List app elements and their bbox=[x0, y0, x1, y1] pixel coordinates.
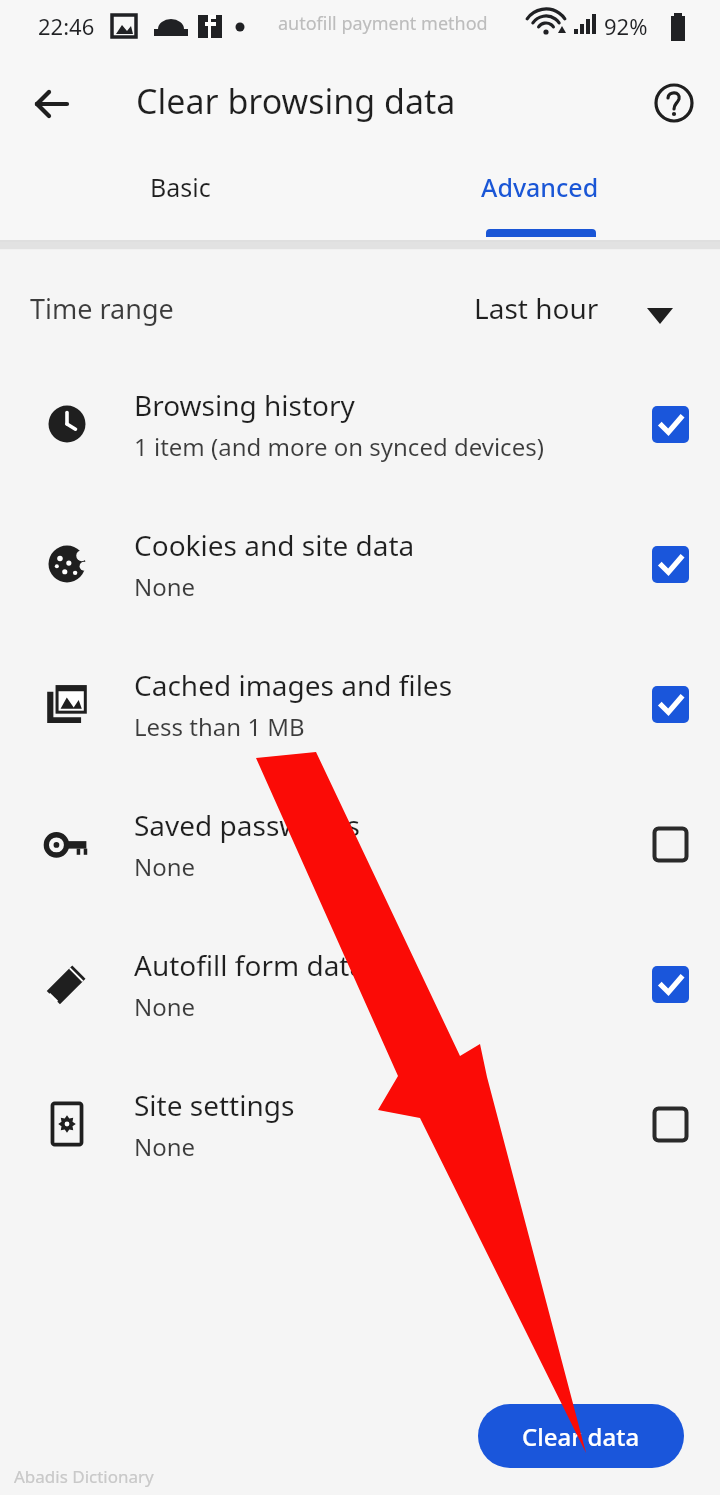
button[interactable]: Time range bbox=[0, 268, 720, 346]
staticText: None bbox=[134, 1130, 196, 1163]
staticText: Site settings bbox=[134, 1086, 295, 1124]
staticText: None bbox=[134, 570, 196, 603]
staticText: Time range bbox=[30, 290, 174, 327]
staticText: Basic bbox=[150, 170, 211, 204]
button[interactable]: Help bbox=[645, 74, 703, 132]
button[interactable]: Unchecked bbox=[652, 1106, 689, 1143]
staticText: Less than 1 MB bbox=[134, 710, 305, 743]
staticText: Cookies and site data bbox=[134, 526, 415, 564]
button[interactable]: Saved passwords bbox=[0, 796, 720, 892]
button[interactable]: Browsing history bbox=[0, 376, 720, 472]
staticText: Autofill form data bbox=[134, 946, 366, 984]
button[interactable]: Cookies and site data bbox=[0, 516, 720, 612]
button[interactable]: Checked bbox=[652, 546, 689, 583]
staticText: Clear browsing data bbox=[136, 78, 456, 124]
staticText: Advanced bbox=[481, 170, 599, 204]
button[interactable]: Unchecked bbox=[652, 826, 689, 863]
button[interactable]: Autofill form data bbox=[0, 936, 720, 1032]
button[interactable]: Clear data bbox=[478, 1404, 684, 1468]
staticText: autofill payment method bbox=[278, 11, 488, 36]
staticText: Saved passwords bbox=[134, 806, 360, 844]
staticText: None bbox=[134, 990, 196, 1023]
staticText: 22:46 bbox=[38, 11, 95, 41]
button[interactable]: Checked bbox=[652, 406, 689, 443]
staticText: Clear data bbox=[522, 1420, 640, 1453]
staticText: Cached images and files bbox=[134, 666, 453, 704]
button[interactable]: Checked bbox=[652, 966, 689, 1003]
staticText: None bbox=[134, 850, 196, 883]
staticText: 1 item (and more on synced devices) bbox=[134, 430, 544, 463]
button[interactable]: Cached images and files bbox=[0, 656, 720, 752]
button[interactable]: Back bbox=[22, 74, 82, 134]
button[interactable]: Basic bbox=[0, 146, 360, 240]
button[interactable]: Site settings bbox=[0, 1076, 720, 1172]
button[interactable]: Advanced bbox=[360, 146, 720, 240]
staticText: Browsing history bbox=[134, 386, 355, 424]
staticText: Abadis Dictionary bbox=[14, 1465, 154, 1488]
button[interactable]: Checked bbox=[652, 686, 689, 723]
staticText: Last hour bbox=[474, 289, 599, 327]
staticText: 92% bbox=[604, 11, 648, 41]
